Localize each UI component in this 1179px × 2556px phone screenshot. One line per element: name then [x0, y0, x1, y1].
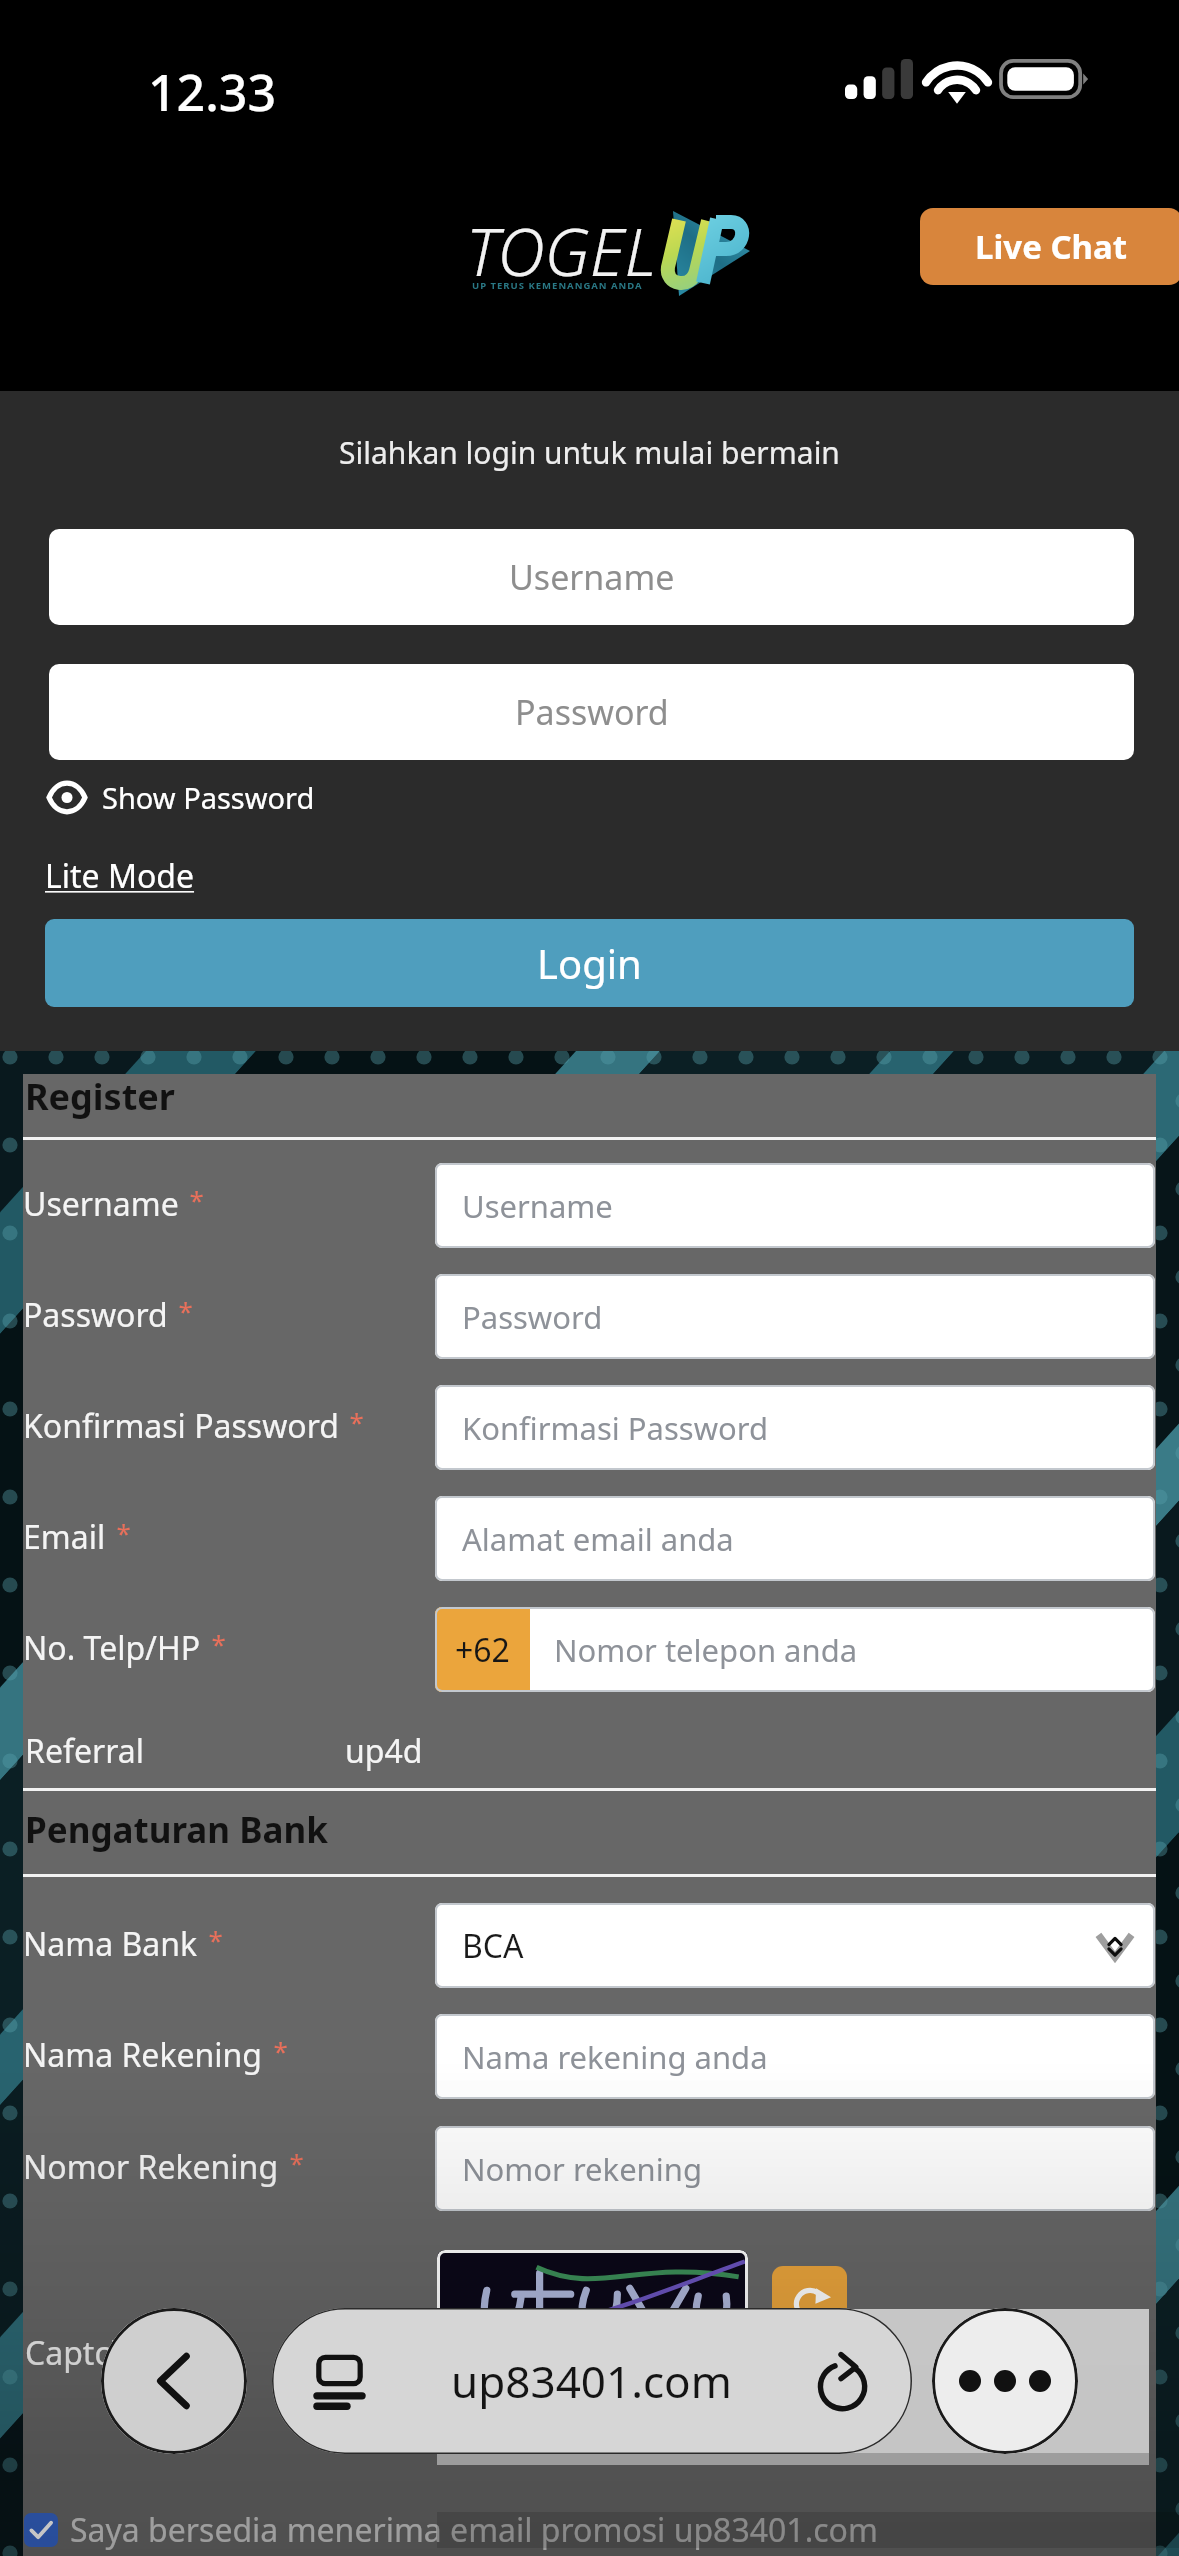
button[interactable]: Refresh captcha	[772, 2266, 847, 2341]
staticText: UP TERUS KEMENANGAN ANDA	[472, 279, 643, 292]
staticText: BCA	[462, 1924, 524, 1968]
staticText: 12.33	[148, 58, 276, 126]
button[interactable]: BCA	[435, 1903, 1155, 1988]
staticText: Referral	[25, 1729, 145, 1773]
staticText: +62	[455, 1628, 510, 1672]
staticText: Show Password	[102, 778, 315, 817]
staticText: *	[198, 1626, 226, 1661]
staticText: Nomor telepon anda	[554, 1629, 858, 1671]
button[interactable]: Back	[101, 2308, 247, 2454]
staticText: Konfirmasi Password	[23, 1404, 339, 1448]
staticText: Nama Rekening	[23, 2033, 263, 2077]
button[interactable]: Username	[435, 1163, 1155, 1248]
button[interactable]: Nama rekening anda	[435, 2014, 1155, 2099]
staticText: Alamat email anda	[462, 1518, 734, 1560]
staticText: Username	[23, 1182, 179, 1226]
staticText: Login	[537, 936, 642, 990]
button[interactable]: Password	[49, 664, 1134, 760]
button[interactable]: +62	[435, 1607, 1155, 1692]
staticText: Lite Mode	[45, 854, 195, 898]
staticText: Silahkan login untuk mulai bermain	[0, 432, 1179, 473]
staticText: No. Telp/HP	[23, 1626, 201, 1670]
staticText: TOGEL	[466, 205, 657, 295]
staticText: Email	[23, 1515, 106, 1559]
staticText: Live Chat	[975, 224, 1128, 269]
staticText: Captcha	[25, 2331, 148, 2375]
button[interactable]: Saya bersedia menerima email promosi up8…	[24, 2508, 878, 2552]
button[interactable]: Password	[435, 1274, 1155, 1359]
button[interactable]: Konfirmasi Password	[435, 1385, 1155, 1470]
button[interactable]: Live Chat	[920, 208, 1179, 285]
staticText: Password	[23, 1293, 168, 1337]
staticText: *	[165, 1293, 193, 1328]
button[interactable]: Show Password	[47, 778, 315, 817]
staticText: Password	[462, 1296, 603, 1338]
staticText: Password	[515, 689, 669, 735]
staticText: Nomor rekening	[462, 2148, 703, 2190]
button[interactable]: Login	[45, 919, 1134, 1007]
staticText: *	[276, 2145, 304, 2180]
staticText: *	[176, 1182, 204, 1217]
button[interactable]: Nomor rekening	[435, 2126, 1155, 2211]
staticText: up83401.com	[363, 2351, 820, 2411]
staticText: Nama rekening anda	[462, 2036, 768, 2078]
staticText: Nama Bank	[23, 1922, 198, 1966]
staticText: *	[103, 1515, 131, 1550]
staticText: Pengaturan Bank	[25, 1806, 328, 1854]
staticText: Nomor Rekening	[23, 2145, 279, 2189]
button[interactable]: More options	[932, 2308, 1078, 2454]
staticText: Register	[25, 1072, 175, 1121]
staticText: Konfirmasi Password	[462, 1407, 769, 1449]
button[interactable]: up83401.com	[272, 2308, 912, 2454]
staticText: Saya bersedia menerima email promosi up8…	[70, 2508, 878, 2552]
button[interactable]: Username	[49, 529, 1134, 625]
staticText: up4d	[345, 1729, 423, 1773]
staticText: *	[260, 2033, 288, 2068]
staticText: Username	[509, 554, 675, 600]
button[interactable]: Lite Mode	[45, 854, 195, 898]
button[interactable]: Alamat email anda	[435, 1496, 1155, 1581]
staticText: *	[336, 1404, 364, 1439]
button[interactable]	[437, 2250, 748, 2346]
staticText: Username	[462, 1185, 613, 1227]
staticText: *	[195, 1922, 223, 1957]
